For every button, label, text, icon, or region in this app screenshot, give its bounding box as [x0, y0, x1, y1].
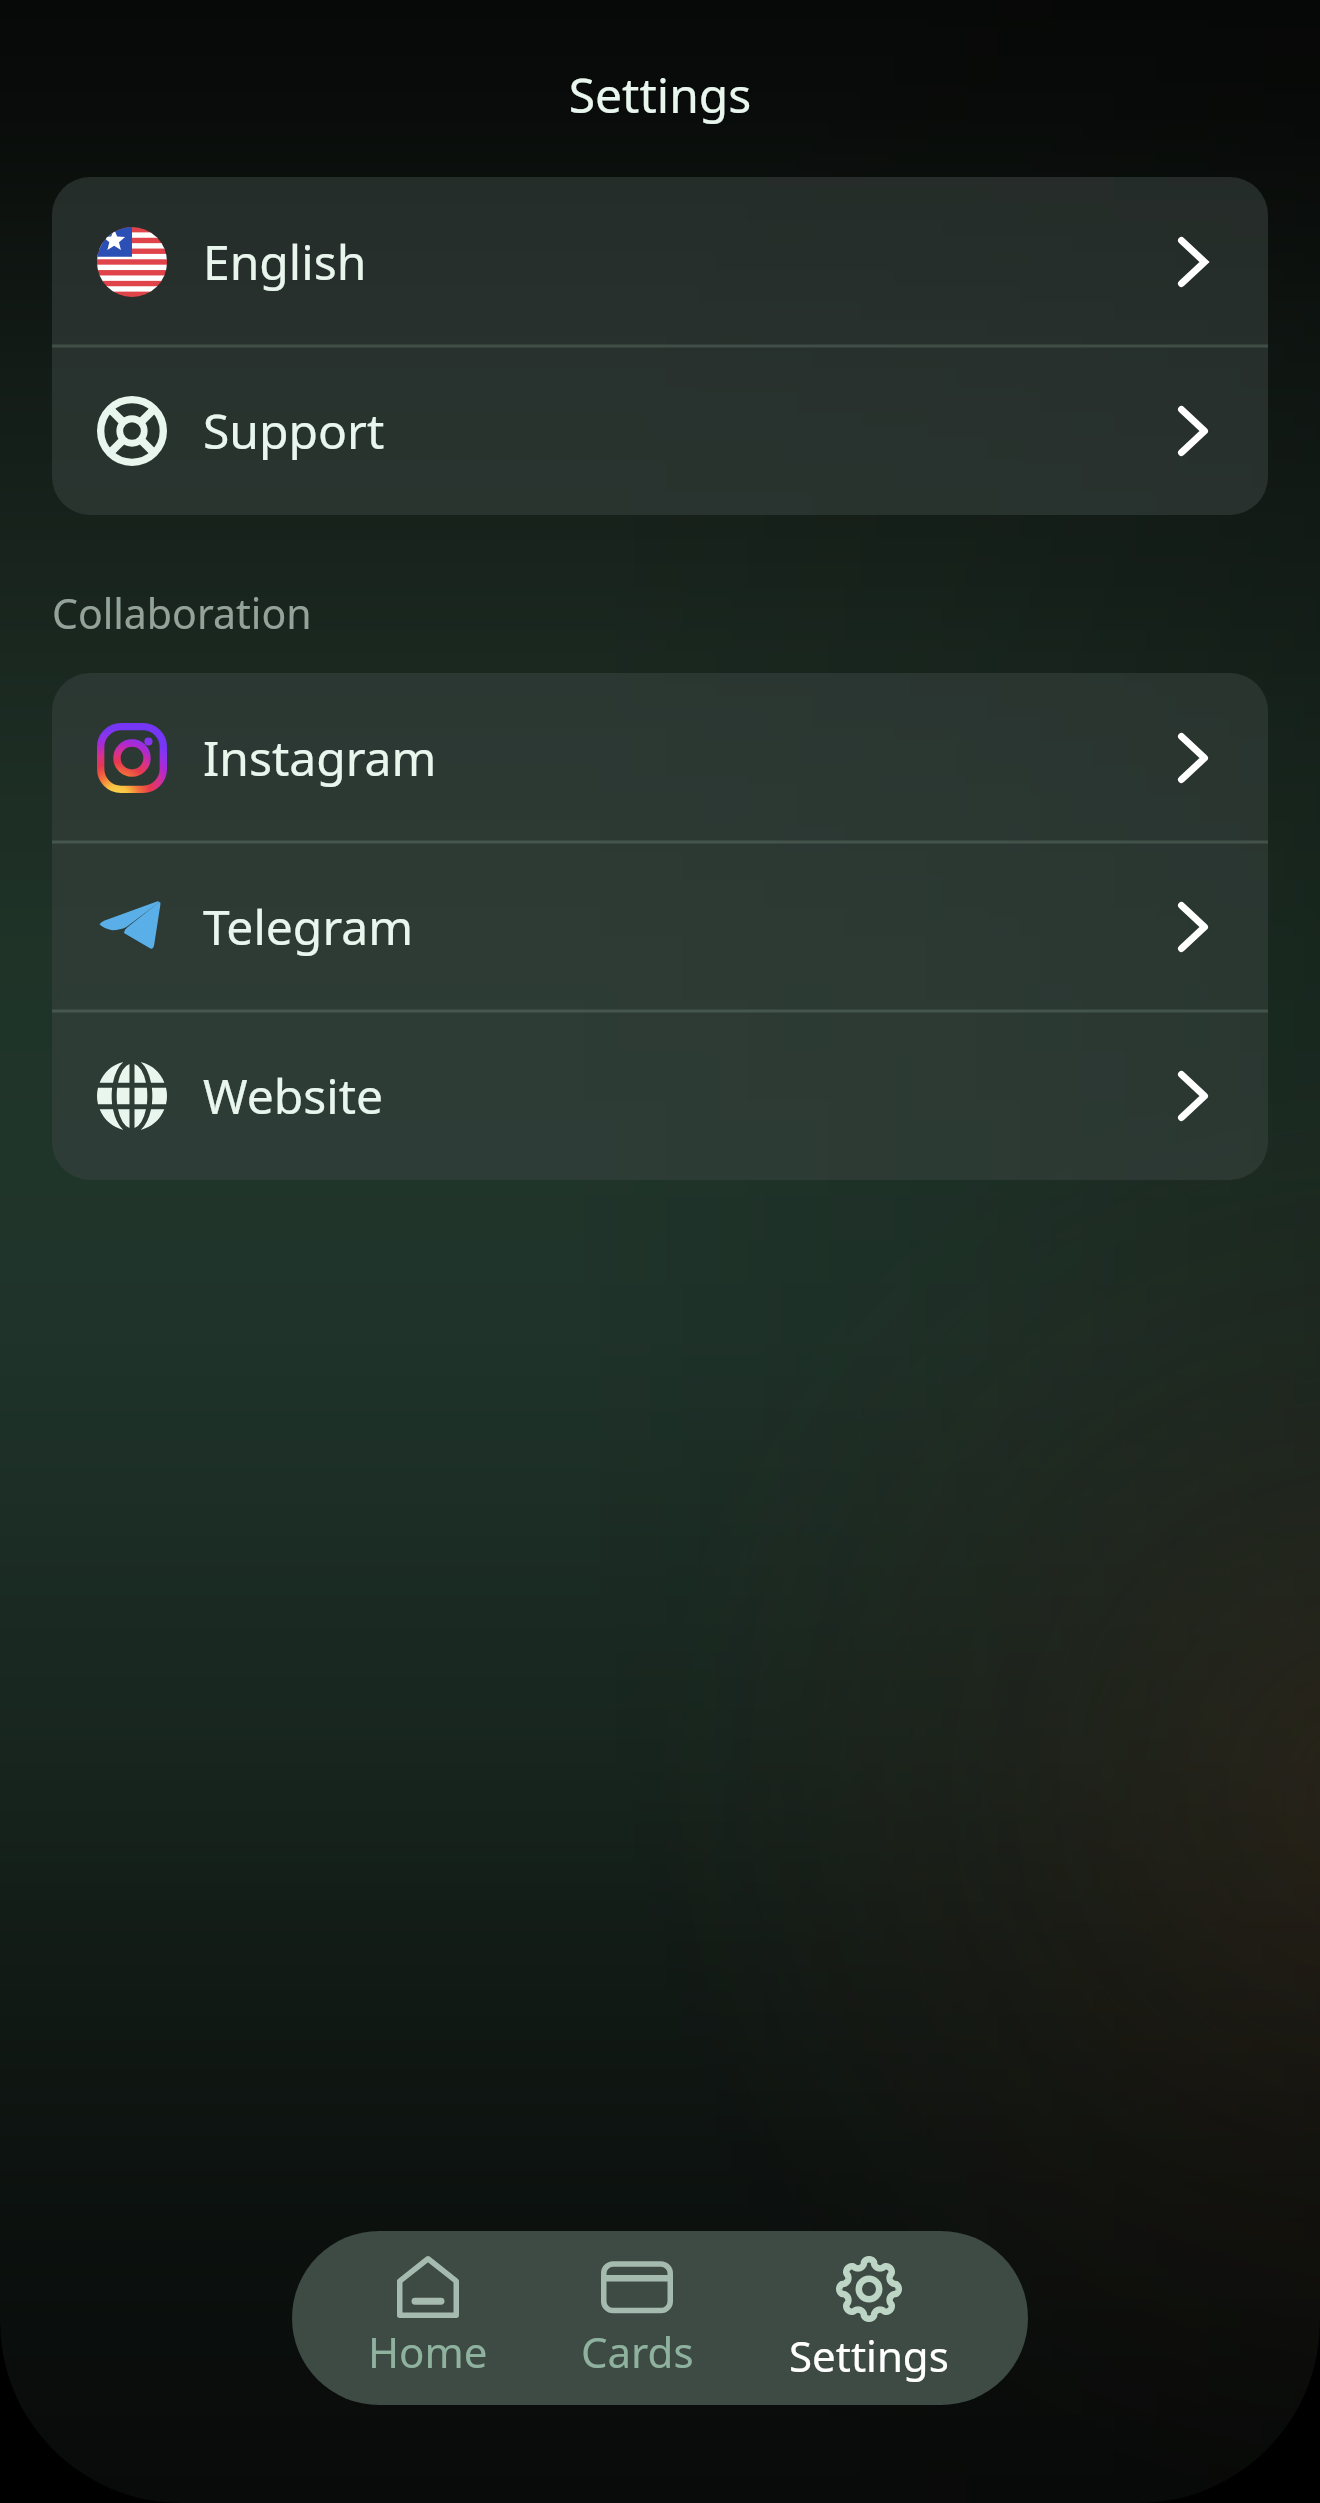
button[interactable]: English: [52, 177, 1268, 346]
staticText: Instagram: [203, 725, 437, 790]
button[interactable]: Telegram: [52, 842, 1268, 1011]
staticText: Settings: [789, 2327, 949, 2384]
button[interactable]: Support: [52, 346, 1268, 515]
button[interactable]: Website: [52, 1011, 1268, 1180]
staticText: Collaboration: [52, 585, 312, 641]
button[interactable]: Instagram: [52, 673, 1268, 842]
staticText: Settings: [0, 62, 1320, 127]
staticText: Telegram: [203, 894, 414, 959]
other: Home: [397, 2256, 459, 2318]
button[interactable]: Cards: [542, 2256, 732, 2405]
other: Cards: [601, 2256, 673, 2318]
button[interactable]: Settings: [774, 2256, 964, 2405]
button[interactable]: Home: [333, 2256, 523, 2405]
staticText: Cards: [581, 2323, 694, 2380]
other: Settings: [836, 2256, 902, 2322]
staticText: Support: [203, 398, 385, 463]
staticText: Website: [203, 1063, 384, 1128]
staticText: English: [203, 229, 367, 294]
staticText: Home: [368, 2323, 488, 2380]
